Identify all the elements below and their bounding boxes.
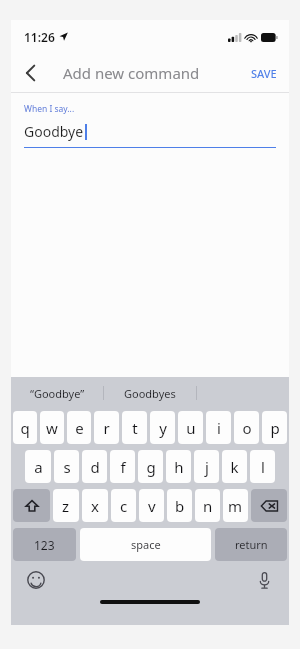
staticText: 123 [34, 537, 55, 553]
staticText: w [46, 418, 58, 438]
button[interactable]: p [262, 411, 287, 444]
staticText: Goodbyes [124, 386, 176, 401]
staticText: Goodbye [24, 122, 84, 141]
button[interactable]: o [234, 411, 259, 444]
button[interactable]: Voice input [253, 569, 275, 591]
staticText: m [228, 496, 243, 516]
staticText: z [62, 496, 70, 516]
staticText: t [132, 418, 138, 438]
button[interactable]: j [194, 450, 219, 483]
staticText: u [186, 418, 196, 438]
button[interactable]: f [110, 450, 135, 483]
button[interactable]: l [250, 450, 275, 483]
staticText: space [131, 537, 161, 552]
staticText: d [90, 457, 100, 477]
staticText: return [235, 537, 268, 552]
staticText: o [242, 418, 252, 438]
button[interactable]: Goodbyes [104, 377, 196, 409]
button[interactable]: u [178, 411, 203, 444]
staticText: j [205, 457, 209, 477]
staticText: y [159, 418, 167, 438]
button[interactable]: SAVE [239, 54, 289, 92]
button[interactable]: a [25, 450, 51, 483]
staticText: r [103, 418, 110, 438]
button[interactable]: y [150, 411, 175, 444]
staticText: k [230, 457, 239, 477]
button[interactable]: n [195, 489, 220, 522]
staticText: SAVE [251, 66, 277, 81]
button[interactable]: r [94, 411, 119, 444]
button[interactable]: “Goodbye” [11, 377, 103, 409]
button[interactable]: 123 [13, 528, 76, 561]
staticText: x [91, 496, 99, 516]
button[interactable]: space [80, 528, 211, 561]
staticText: Add new command [63, 63, 200, 83]
button[interactable]: m [223, 489, 248, 522]
staticText: l [261, 457, 265, 477]
button[interactable]: Back [11, 54, 49, 92]
button[interactable]: s [54, 450, 79, 483]
button[interactable]: i [206, 411, 231, 444]
staticText: e [75, 418, 84, 438]
staticText: s [63, 457, 71, 477]
button[interactable]: c [111, 489, 136, 522]
button[interactable]: v [139, 489, 164, 522]
staticText: i [217, 418, 221, 438]
staticText: “Goodbye” [30, 386, 85, 401]
staticText: g [146, 457, 156, 477]
button[interactable]: b [167, 489, 192, 522]
staticText: h [174, 457, 184, 477]
button[interactable]: Backspace [251, 489, 287, 522]
staticText: b [175, 496, 185, 516]
button[interactable]: t [122, 411, 147, 444]
button[interactable]: d [82, 450, 107, 483]
button[interactable]: k [222, 450, 247, 483]
button[interactable]: w [40, 411, 64, 444]
staticText: n [203, 496, 213, 516]
button[interactable]: x [82, 489, 108, 522]
button[interactable]: g [138, 450, 163, 483]
button[interactable]: e [67, 411, 91, 444]
staticText: 11:26 [24, 29, 55, 45]
button[interactable]: Shift [13, 489, 50, 522]
staticText: c [120, 496, 128, 516]
button[interactable]: q [13, 411, 37, 444]
button[interactable]: h [166, 450, 191, 483]
button[interactable]: Emoji [25, 569, 47, 591]
staticText: q [20, 418, 30, 438]
staticText: v [148, 496, 156, 516]
staticText: When I say... [24, 103, 75, 115]
button[interactable]: return [215, 528, 287, 561]
staticText: p [270, 418, 280, 438]
button[interactable]: z [53, 489, 79, 522]
staticText: a [34, 457, 43, 477]
staticText: f [120, 457, 126, 477]
